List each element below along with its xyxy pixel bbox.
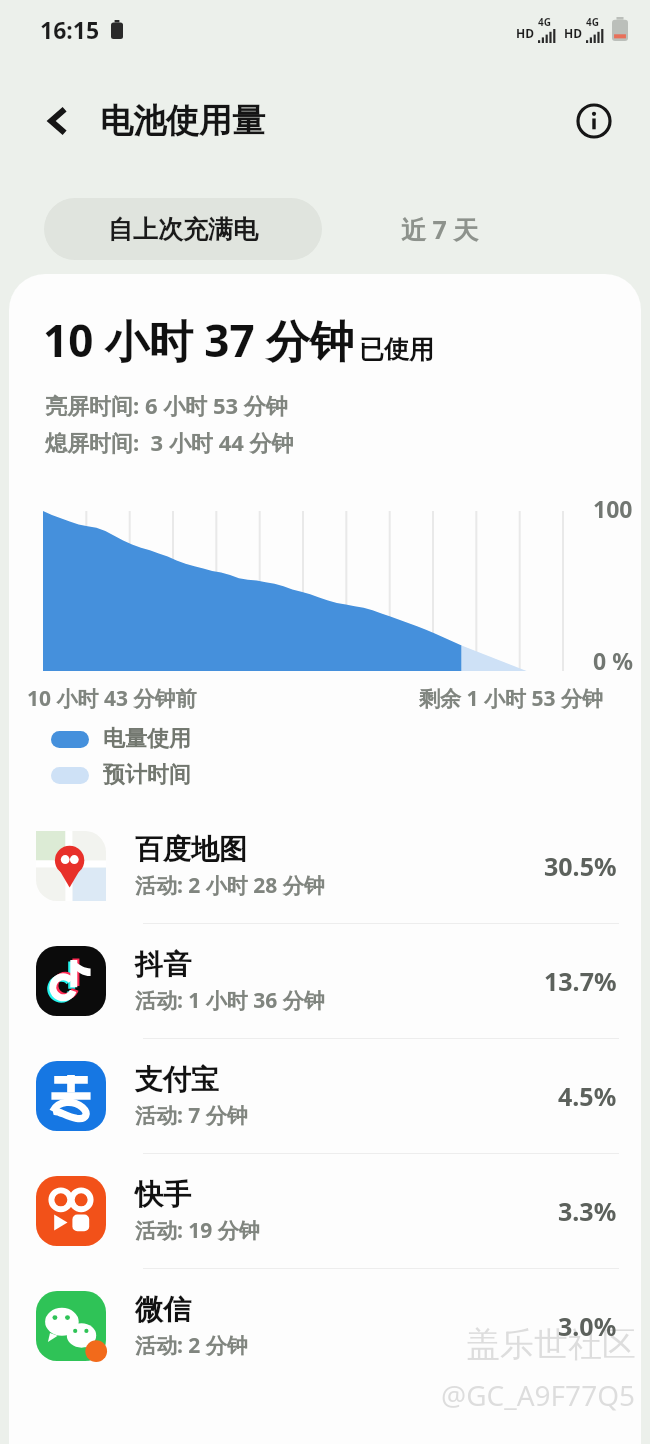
staticText: 活动: 19 分钟 xyxy=(135,1216,260,1245)
staticText: 盖乐世社区 xyxy=(466,1323,636,1366)
button[interactable]: 快手 xyxy=(9,1154,641,1268)
button[interactable]: 百度地图 xyxy=(9,809,641,923)
staticText: 10 小时 37 分钟 xyxy=(43,310,354,370)
staticText: 抖音 xyxy=(135,947,191,982)
staticText: @GC_A9F77Q5 xyxy=(441,1376,636,1414)
staticText: 13.7% xyxy=(544,964,617,998)
staticText: 活动: 2 分钟 xyxy=(135,1331,248,1360)
staticText: 3.3% xyxy=(558,1194,617,1228)
staticText: 电池使用量 xyxy=(100,100,265,142)
staticText: 0 % xyxy=(593,645,633,676)
staticText: 近 7 天 xyxy=(401,212,479,246)
staticText: 自上次充满电 xyxy=(108,214,258,245)
button[interactable]: 支付宝 xyxy=(9,1039,641,1153)
staticText: 10 小时 43 分钟前 xyxy=(27,684,197,713)
staticText: 4G xyxy=(538,15,551,29)
staticText: 预计时间 xyxy=(103,761,191,789)
staticText: 16:15 xyxy=(40,14,100,45)
button[interactable]: 近 7 天 xyxy=(322,198,558,260)
button[interactable]: 抖音 xyxy=(9,924,641,1038)
staticText: 活动: 2 小时 28 分钟 xyxy=(135,871,325,900)
button[interactable]: Information xyxy=(564,91,624,151)
staticText: 4G xyxy=(586,15,599,29)
staticText: HD xyxy=(564,25,582,41)
staticText: 100 xyxy=(593,493,633,524)
staticText: 活动: 7 分钟 xyxy=(135,1101,248,1130)
button[interactable]: Back xyxy=(28,90,90,152)
staticText: 微信 xyxy=(135,1292,191,1327)
staticText: 3.0% xyxy=(558,1309,617,1343)
staticText: 快手 xyxy=(135,1177,191,1212)
staticText: 4.5% xyxy=(558,1079,617,1113)
staticText: 熄屏时间: 3 小时 44 分钟 xyxy=(45,427,294,457)
button[interactable]: 自上次充满电 xyxy=(44,198,322,260)
staticText: 百度地图 xyxy=(135,832,247,867)
staticText: 活动: 1 小时 36 分钟 xyxy=(135,986,325,1015)
staticText: 支付宝 xyxy=(135,1062,219,1097)
button[interactable]: 微信 xyxy=(9,1269,641,1383)
staticText: 已使用 xyxy=(359,334,434,365)
staticText: 亮屏时间: 6 小时 53 分钟 xyxy=(45,390,288,420)
staticText: HD xyxy=(516,25,534,41)
staticText: 30.5% xyxy=(544,849,617,883)
staticText: 电量使用 xyxy=(103,725,191,753)
staticText: 剩余 1 小时 53 分钟 xyxy=(419,684,603,713)
